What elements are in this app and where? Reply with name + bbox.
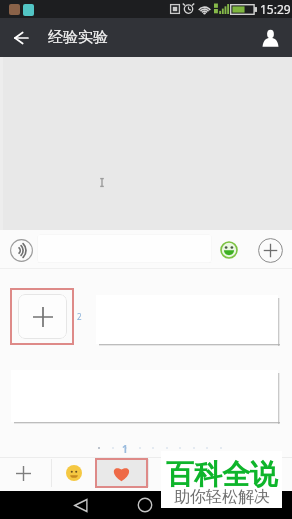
button[interactable]: Back (9, 26, 33, 50)
staticText: 经验实验 (48, 28, 108, 47)
staticText: 1 (122, 442, 128, 454)
button[interactable]: Add stickers (0, 458, 46, 488)
staticText: 助你轻松解决 (174, 487, 270, 507)
button[interactable]: Emoji (52, 458, 95, 488)
staticText: 2 (77, 311, 82, 322)
button[interactable]: Voice message (8, 237, 34, 263)
staticText: 15:29 (260, 1, 291, 17)
staticText: 百科全说 (166, 457, 278, 492)
button[interactable]: Contact profile (255, 23, 285, 53)
button[interactable]: Add sticker (18, 294, 67, 339)
button[interactable]: Favorite stickers (95, 458, 148, 488)
button[interactable]: Emoji (217, 238, 241, 262)
button[interactable]: Home (132, 492, 158, 518)
button[interactable]: More options (256, 236, 284, 264)
button[interactable]: Back (68, 492, 94, 518)
